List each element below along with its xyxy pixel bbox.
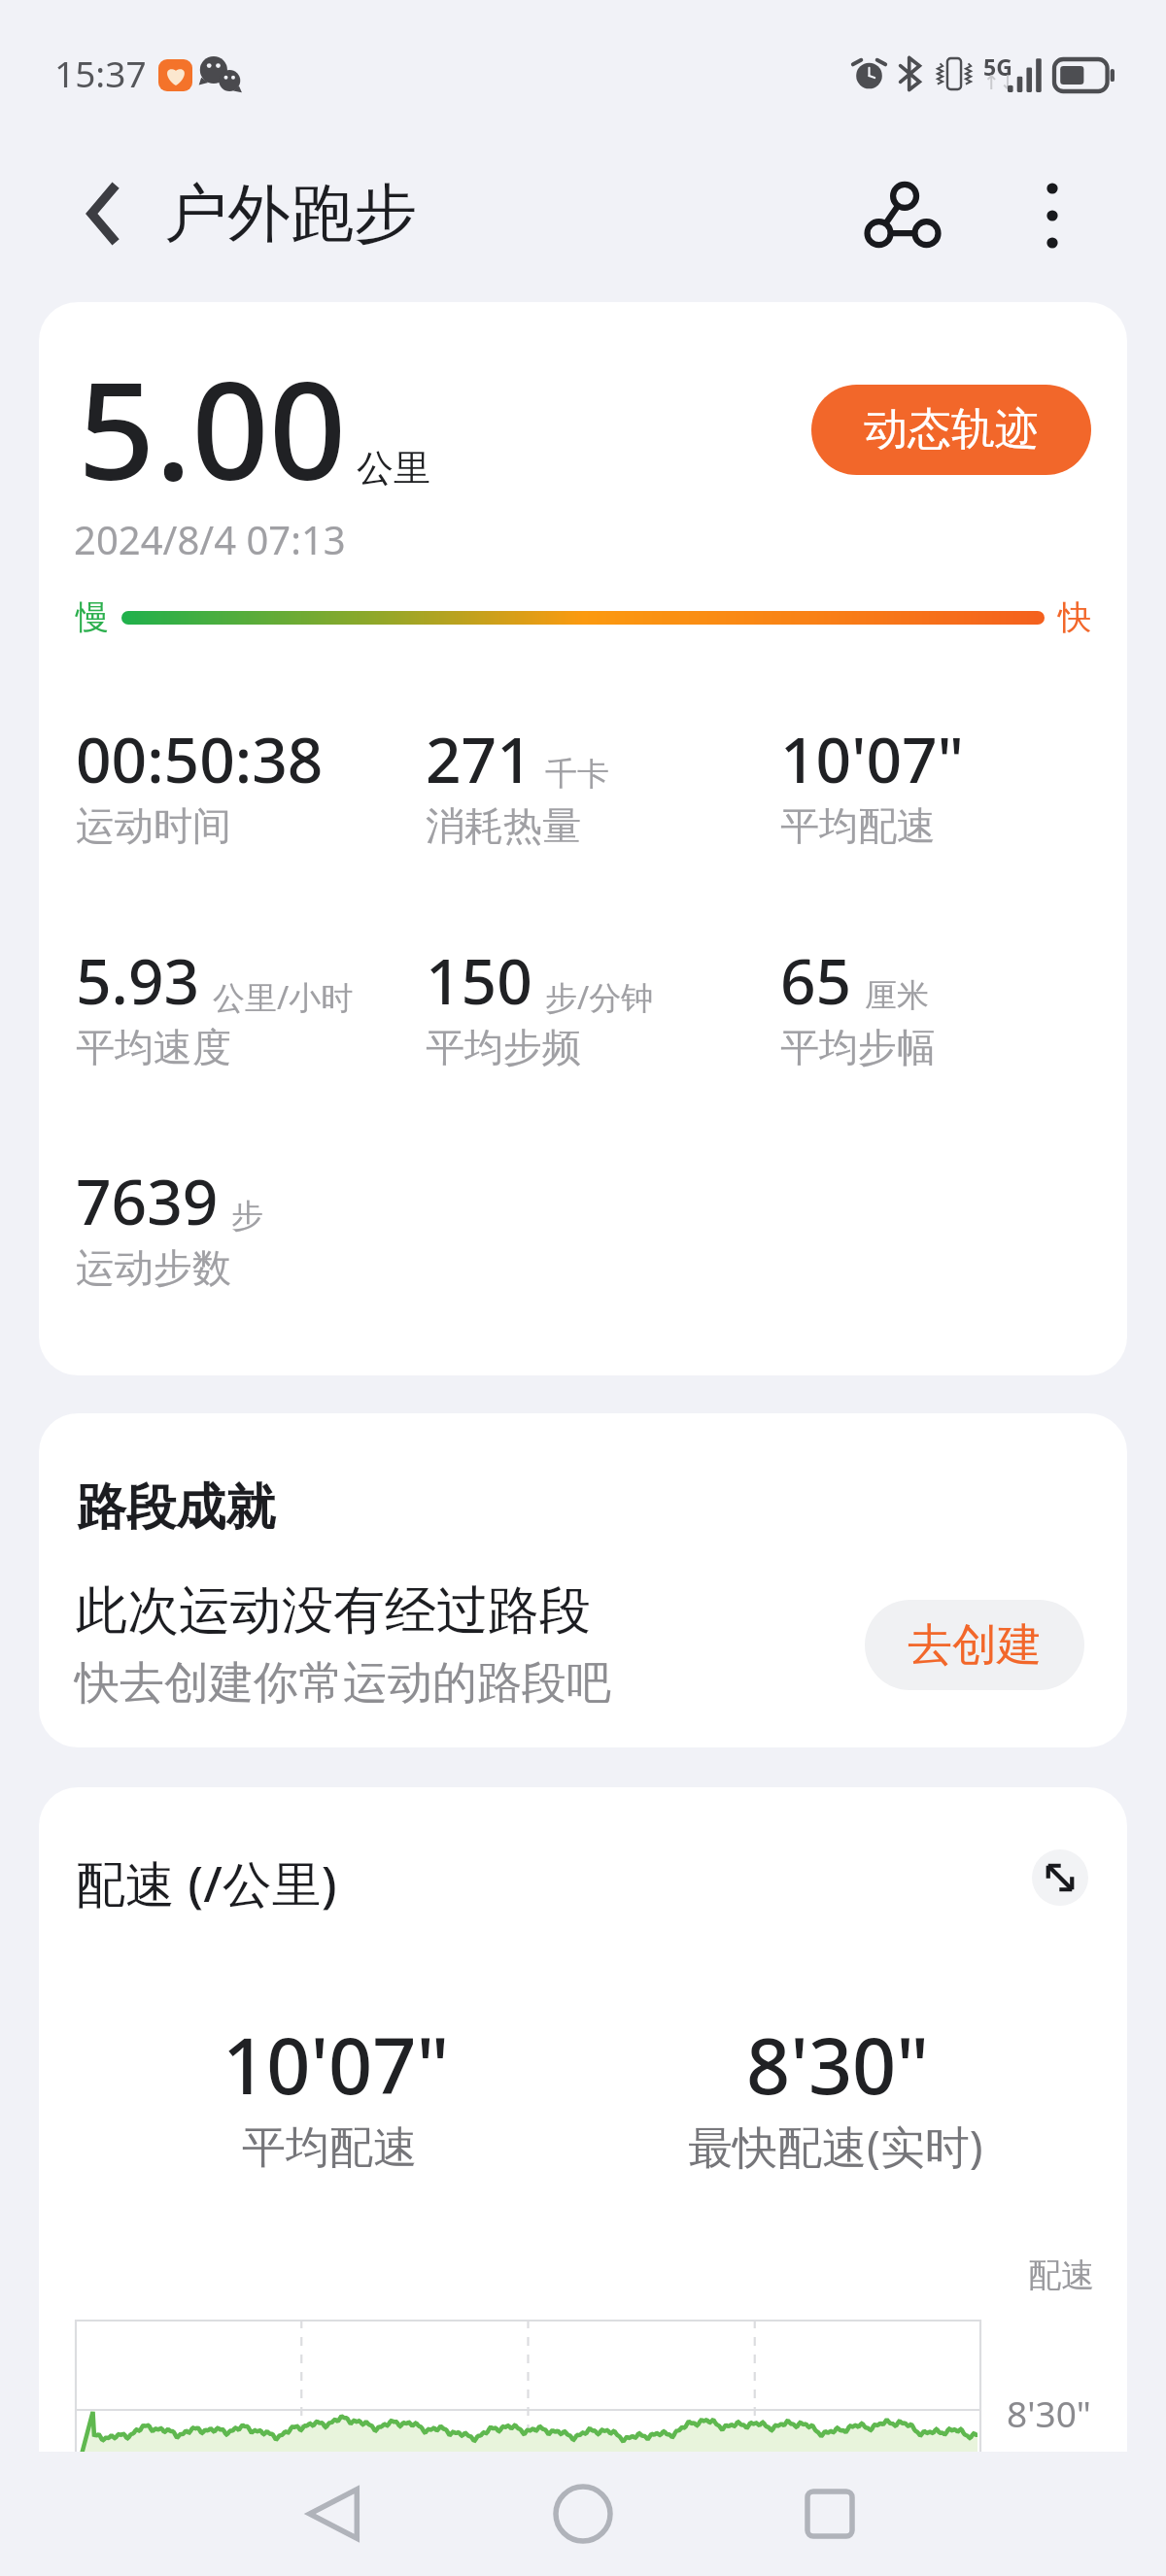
- staticText: 快去创建你常运动的路段吧: [75, 1655, 611, 1712]
- staticText: 运动时间: [76, 801, 231, 850]
- staticText: 户外跑步: [164, 174, 417, 254]
- staticText: 平均速度: [76, 1023, 231, 1071]
- staticText: 慢: [76, 596, 109, 638]
- staticText: 7639: [76, 1159, 219, 1243]
- staticText: 动态轨迹: [864, 402, 1039, 458]
- button[interactable]: 去创建: [865, 1600, 1084, 1690]
- staticText: 公里: [357, 445, 430, 491]
- staticText: 5.93: [76, 938, 200, 1023]
- staticText: 步: [231, 1196, 263, 1237]
- staticText: 150: [426, 938, 532, 1023]
- staticText: 配速: [1028, 2254, 1094, 2296]
- staticText: 5.00: [78, 335, 347, 519]
- staticText: 2024/8/4 07:13: [74, 513, 346, 565]
- staticText: 公里/小时: [213, 975, 354, 1019]
- staticText: 15:37: [54, 49, 147, 97]
- staticText: 配速 (/公里): [76, 1848, 337, 1916]
- staticText: 00:50:38: [76, 717, 324, 801]
- staticText: 平均配速: [242, 2120, 417, 2176]
- staticText: 65: [780, 938, 852, 1023]
- staticText: 消耗热量: [426, 801, 581, 850]
- staticText: 运动步数: [76, 1243, 231, 1292]
- staticText: 5G: [983, 51, 1012, 82]
- staticText: 此次运动没有经过路段: [76, 1578, 591, 1644]
- button[interactable]: Back: [246, 2452, 421, 2576]
- staticText: 平均步频: [426, 1023, 581, 1071]
- staticText: 10'07": [223, 2013, 450, 2118]
- button[interactable]: Expand chart: [1032, 1849, 1088, 1906]
- staticText: 去创建: [908, 1617, 1042, 1674]
- staticText: 最快配速(实时): [688, 2116, 983, 2177]
- staticText: 10'07": [780, 717, 965, 801]
- staticText: ↑↓: [983, 71, 1016, 93]
- staticText: 快: [1058, 596, 1091, 638]
- staticText: 千卡: [545, 754, 609, 795]
- staticText: 厘米: [865, 975, 929, 1016]
- staticText: 8'30": [1007, 2389, 1091, 2437]
- button[interactable]: Recents: [742, 2452, 917, 2576]
- button[interactable]: Back: [59, 173, 141, 254]
- button[interactable]: More options: [1002, 160, 1103, 271]
- staticText: 8'30": [746, 2013, 930, 2118]
- staticText: 步/分钟: [545, 975, 654, 1019]
- staticText: 路段成就: [77, 1476, 275, 1539]
- button[interactable]: Share: [834, 159, 970, 270]
- button[interactable]: 动态轨迹: [811, 385, 1091, 475]
- staticText: 平均步幅: [780, 1023, 936, 1071]
- staticText: 271: [426, 717, 532, 801]
- button[interactable]: Home: [496, 2452, 670, 2576]
- staticText: 平均配速: [780, 801, 936, 850]
